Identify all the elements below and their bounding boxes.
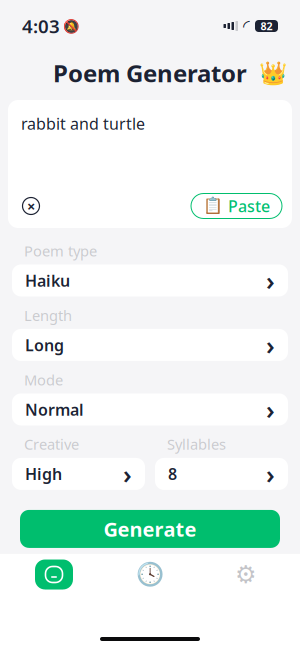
button[interactable]: High — [12, 458, 145, 490]
staticText: 🔕 — [63, 18, 80, 34]
staticText: Haiku — [25, 270, 70, 291]
staticText: Normal — [25, 399, 84, 420]
staticText: 8 — [168, 463, 177, 484]
staticText: Creative — [24, 434, 79, 454]
staticText: 82 — [260, 19, 272, 33]
button[interactable]: Premium — [256, 56, 290, 90]
button[interactable]: Settings — [198, 553, 294, 595]
button[interactable]: Normal — [12, 393, 288, 425]
staticText: 🕓 — [136, 562, 164, 587]
staticText: Poem type — [24, 241, 97, 260]
staticText: 📋 — [203, 197, 223, 215]
staticText: Mode — [24, 370, 63, 389]
staticText: Generate — [103, 516, 196, 542]
staticText: High — [25, 463, 62, 484]
staticText: Syllables — [167, 434, 226, 454]
button[interactable]: Clear text — [18, 193, 44, 219]
button[interactable]: Generate — [6, 553, 102, 595]
button[interactable]: Generate — [20, 510, 280, 548]
button[interactable]: 8 — [155, 458, 288, 490]
button[interactable]: 📋 — [191, 193, 282, 218]
staticText: › — [266, 457, 275, 491]
staticText: › — [123, 457, 132, 491]
button[interactable]: History — [102, 553, 198, 595]
staticText: Long — [25, 334, 64, 355]
staticText: Paste — [228, 195, 270, 217]
button[interactable]: Long — [12, 329, 288, 361]
staticText: rabbit and turtle — [21, 113, 145, 134]
staticText: ⚙ — [235, 561, 257, 588]
staticText: × — [27, 196, 35, 216]
staticText: › — [266, 328, 275, 362]
staticText: ◜ — [243, 16, 250, 36]
staticText: Poem Generator — [53, 57, 247, 89]
staticText: › — [266, 264, 275, 297]
staticText: Length — [24, 305, 72, 325]
button[interactable]: Haiku — [12, 264, 288, 296]
staticText: 4:03 — [22, 14, 60, 38]
staticText: 👑 — [259, 60, 287, 86]
staticText: › — [266, 393, 275, 426]
